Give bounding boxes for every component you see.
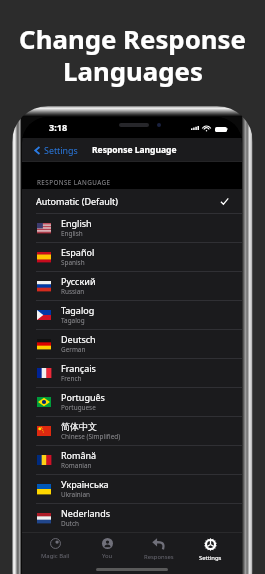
staticText: 3:18 <box>49 121 68 133</box>
button[interactable]: Українська <box>22 474 242 503</box>
staticText: Português <box>61 391 105 403</box>
button[interactable]: Español <box>22 242 242 271</box>
button[interactable]: You <box>81 538 133 560</box>
button[interactable]: Tagalog <box>22 300 242 329</box>
button[interactable]: Settings <box>185 538 235 562</box>
staticText: Responses <box>144 553 174 561</box>
staticText: 简体中文 <box>61 421 97 432</box>
staticText: Romanian <box>61 461 92 470</box>
button[interactable]: Français <box>22 358 242 387</box>
staticText: English <box>61 217 92 229</box>
button[interactable]: Responses <box>133 538 185 561</box>
staticText: French <box>61 374 82 383</box>
staticText: Українська <box>61 478 109 490</box>
button[interactable]: English <box>22 213 242 242</box>
staticText: Русский <box>61 275 96 287</box>
button[interactable]: Deutsch <box>22 329 242 358</box>
staticText: Français <box>61 362 96 374</box>
staticText: English <box>61 229 83 238</box>
button[interactable]: Português <box>22 387 242 416</box>
button[interactable]: Settings <box>22 140 84 160</box>
button[interactable]: Nederlands <box>22 503 242 532</box>
staticText: Română <box>61 449 97 461</box>
staticText: Settings <box>44 144 78 156</box>
staticText: RESPONSE LANGUAGE <box>37 178 111 187</box>
staticText: German <box>61 345 86 354</box>
button[interactable]: Română <box>22 445 242 474</box>
staticText: Russian <box>61 287 85 296</box>
staticText: Español <box>61 246 95 258</box>
staticText: Settings <box>199 554 222 562</box>
button[interactable]: 简体中文 <box>22 416 242 445</box>
button[interactable]: Magic Ball <box>29 538 81 560</box>
staticText: Tagalog <box>61 316 85 325</box>
staticText: Response Language <box>92 144 177 156</box>
button[interactable]: Русский <box>22 271 242 300</box>
staticText: Portuguese <box>61 403 96 412</box>
staticText: Change Response <box>19 21 246 56</box>
staticText: Nederlands <box>61 507 111 519</box>
button[interactable]: Automatic (Default) <box>22 189 242 213</box>
staticText: Languages <box>63 53 203 88</box>
staticText: Spanish <box>61 258 85 267</box>
staticText: You <box>102 552 113 560</box>
staticText: Automatic (Default) <box>36 195 119 207</box>
staticText: Tagalog <box>61 304 95 316</box>
staticText: Chinese (Simplified) <box>61 432 121 441</box>
staticText: Magic Ball <box>41 552 70 560</box>
staticText: Ukrainian <box>61 490 90 499</box>
staticText: Dutch <box>61 519 79 528</box>
staticText: Deutsch <box>61 333 96 345</box>
